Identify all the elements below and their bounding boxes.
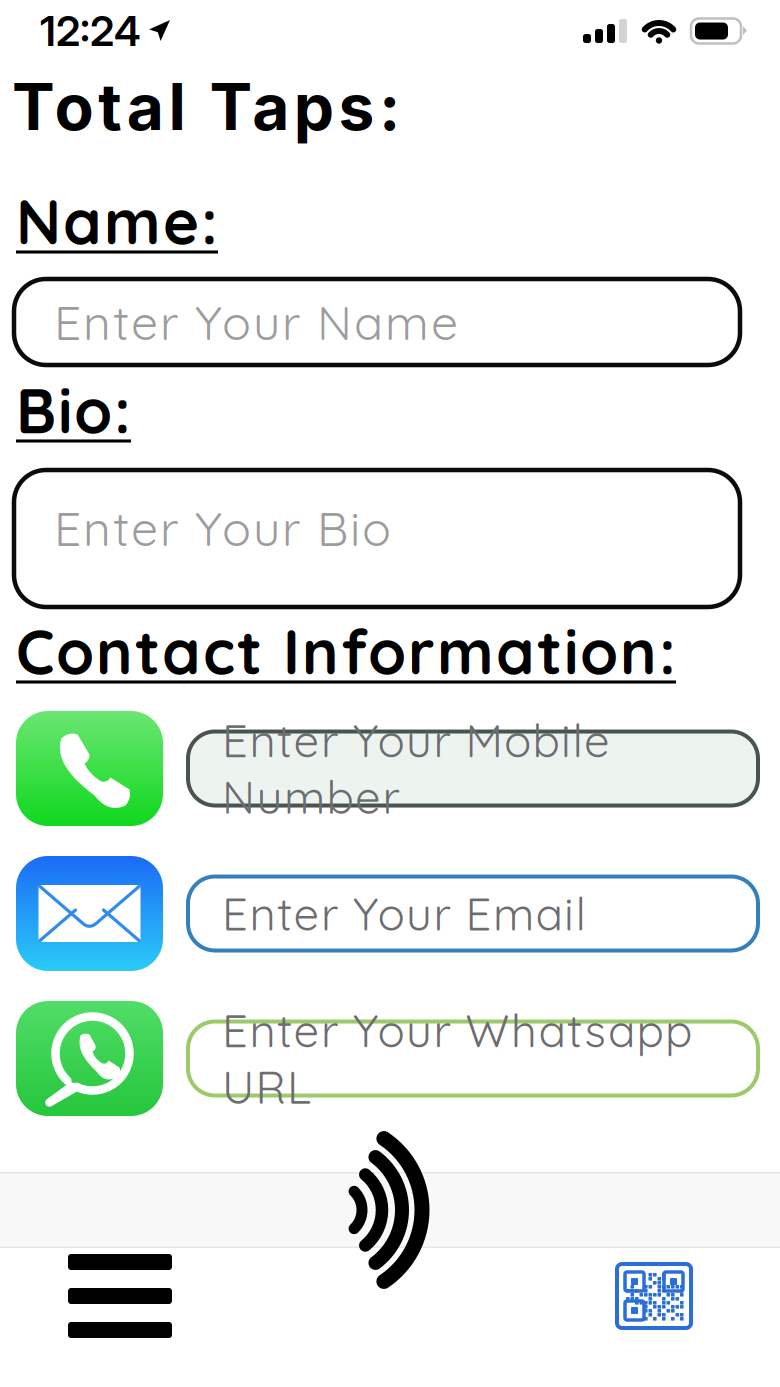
staticText: Enter Your Mobile Number — [222, 712, 610, 825]
staticText: Enter Your Bio — [54, 498, 391, 558]
button[interactable]: Enter Your Whatsapp URL — [188, 1021, 758, 1095]
button[interactable]: Show QR code — [554, 1248, 754, 1344]
staticText: Enter Your Name — [54, 292, 458, 352]
staticText: Contact Information: — [16, 613, 676, 690]
staticText: 12:24 — [40, 6, 141, 56]
button[interactable]: Enter Your Mobile Number — [188, 731, 758, 805]
staticText: Enter Your Whatsapp URL — [222, 1002, 692, 1115]
staticText: Enter Your Email — [222, 885, 585, 942]
button[interactable]: Enter Your Bio — [14, 470, 740, 607]
button[interactable]: Enter Your Name — [14, 279, 740, 365]
staticText: Bio: — [16, 372, 131, 449]
staticText: Name: — [16, 183, 218, 260]
button[interactable]: Enter Your Email — [188, 876, 758, 950]
button[interactable]: Menu — [20, 1248, 220, 1344]
staticText: Total Taps: — [12, 68, 400, 145]
